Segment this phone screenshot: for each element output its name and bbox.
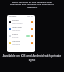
button[interactable]: Amazon bbox=[7, 39, 35, 46]
button[interactable]: Spotify bbox=[7, 18, 35, 25]
button[interactable]: Salary bbox=[7, 32, 35, 39]
staticText: See all bbox=[27, 15, 33, 18]
staticText: Transport bbox=[12, 29, 21, 31]
button[interactable]: Uber Ride bbox=[7, 25, 35, 32]
staticText: Spotify bbox=[12, 19, 19, 22]
staticText: Uber Ride bbox=[12, 26, 22, 29]
staticText: Every account in one timeline with spend… bbox=[7, 0, 57, 9]
staticText: Shopping bbox=[12, 43, 21, 45]
staticText: Available on iOS and Android with privat… bbox=[2, 54, 62, 61]
staticText: Amazon bbox=[12, 40, 21, 43]
staticText: Income bbox=[12, 36, 19, 38]
staticText: Activity bbox=[9, 15, 17, 18]
staticText: Subscription bbox=[12, 22, 23, 24]
staticText: Salary bbox=[12, 33, 18, 36]
